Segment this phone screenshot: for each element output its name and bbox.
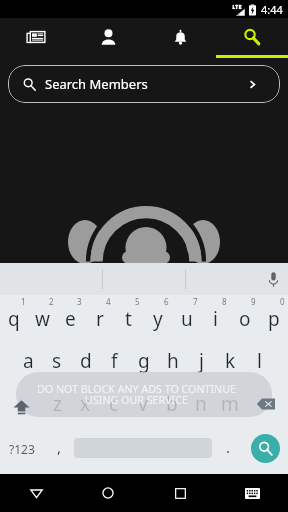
staticText: n (195, 391, 207, 417)
button[interactable]: DO NOT BLOCK ANY ADS TO CONTINUE USING O… (16, 372, 272, 417)
button[interactable]: , (44, 427, 74, 474)
button[interactable]: 8 (201, 295, 230, 339)
button[interactable]: 1 (0, 295, 28, 339)
staticText: k (225, 348, 236, 374)
button[interactable]: 5 (114, 295, 143, 339)
button[interactable]: c (99, 383, 128, 427)
staticText: m (221, 391, 239, 417)
button[interactable]: 7 (172, 295, 201, 339)
button[interactable] (185, 263, 288, 295)
button[interactable]: Voice input (262, 268, 284, 290)
button[interactable]: . (212, 427, 244, 474)
staticText: l (257, 348, 262, 374)
button[interactable]: 0 (259, 295, 288, 339)
button[interactable]: s (42, 339, 71, 383)
staticText: Search Members (45, 75, 148, 93)
staticText: t (125, 306, 132, 332)
button[interactable]: News (0, 18, 72, 58)
button[interactable]: z (43, 383, 71, 427)
staticText: o (239, 306, 251, 332)
button[interactable]: n (186, 383, 215, 427)
button[interactable]: ?123 (0, 427, 44, 474)
button[interactable]: Home (72, 474, 144, 512)
button[interactable]: m (215, 383, 244, 427)
staticText: u (181, 306, 193, 332)
button[interactable]: f (100, 339, 129, 383)
staticText: z (53, 391, 62, 417)
staticText: 1 (21, 296, 26, 307)
staticText: 4 (106, 296, 111, 307)
staticText: v (138, 391, 148, 417)
button[interactable]: k (216, 339, 245, 383)
staticText: ?123 (9, 441, 35, 457)
staticText: f (111, 348, 118, 374)
button[interactable]: g (129, 339, 158, 383)
button[interactable]: 3 (56, 295, 85, 339)
button[interactable]: Back (0, 474, 72, 512)
staticText: j (199, 348, 204, 374)
button[interactable]: x (71, 383, 99, 427)
staticText: y (153, 306, 163, 332)
button[interactable]: v (128, 383, 157, 427)
staticText: , (57, 437, 62, 457)
staticText: a (23, 348, 34, 374)
button[interactable]: Members (72, 18, 144, 58)
button[interactable]: Notifications (144, 18, 216, 58)
button[interactable]: Search (216, 18, 288, 58)
staticText: 3 (77, 296, 82, 307)
staticText: 2 (49, 296, 54, 307)
button[interactable]: a (14, 339, 42, 383)
staticText: r (96, 306, 104, 332)
staticText: 9 (251, 296, 256, 307)
staticText: h (167, 348, 179, 374)
staticText: p (268, 306, 280, 332)
staticText: g (138, 348, 150, 374)
button[interactable]: l (245, 339, 274, 383)
button[interactable]: Search Members (8, 65, 280, 103)
button[interactable]: d (71, 339, 100, 383)
staticText: e (65, 306, 76, 332)
staticText: 4:44 (261, 2, 283, 17)
staticText: q (8, 306, 20, 332)
staticText: d (80, 348, 92, 374)
staticText: 8 (222, 296, 227, 307)
staticText: 0 (280, 296, 285, 307)
staticText: b (166, 391, 178, 417)
button[interactable]: Recents (144, 474, 216, 512)
button[interactable]: Search (251, 434, 280, 463)
button[interactable]: 2 (28, 295, 56, 339)
staticText: DO NOT BLOCK ANY ADS TO CONTINUE USING O… (37, 382, 236, 407)
staticText: c (109, 391, 119, 417)
staticText: x (80, 391, 91, 417)
button[interactable]: b (157, 383, 186, 427)
staticText: i (213, 306, 218, 332)
button[interactable]: h (158, 339, 187, 383)
button[interactable]: 9 (230, 295, 259, 339)
staticText: 6 (164, 296, 169, 307)
button[interactable]: Backspace (244, 383, 288, 427)
button[interactable]: Hide keyboard (216, 474, 288, 512)
staticText: 5 (135, 296, 140, 307)
button[interactable]: 6 (143, 295, 172, 339)
staticText: s (52, 348, 62, 374)
staticText: . (226, 437, 231, 457)
staticText: w (35, 306, 50, 332)
button[interactable]: 4 (85, 295, 114, 339)
button[interactable]: j (187, 339, 216, 383)
button[interactable]: Shift (0, 383, 43, 427)
staticText: 7 (193, 296, 198, 307)
